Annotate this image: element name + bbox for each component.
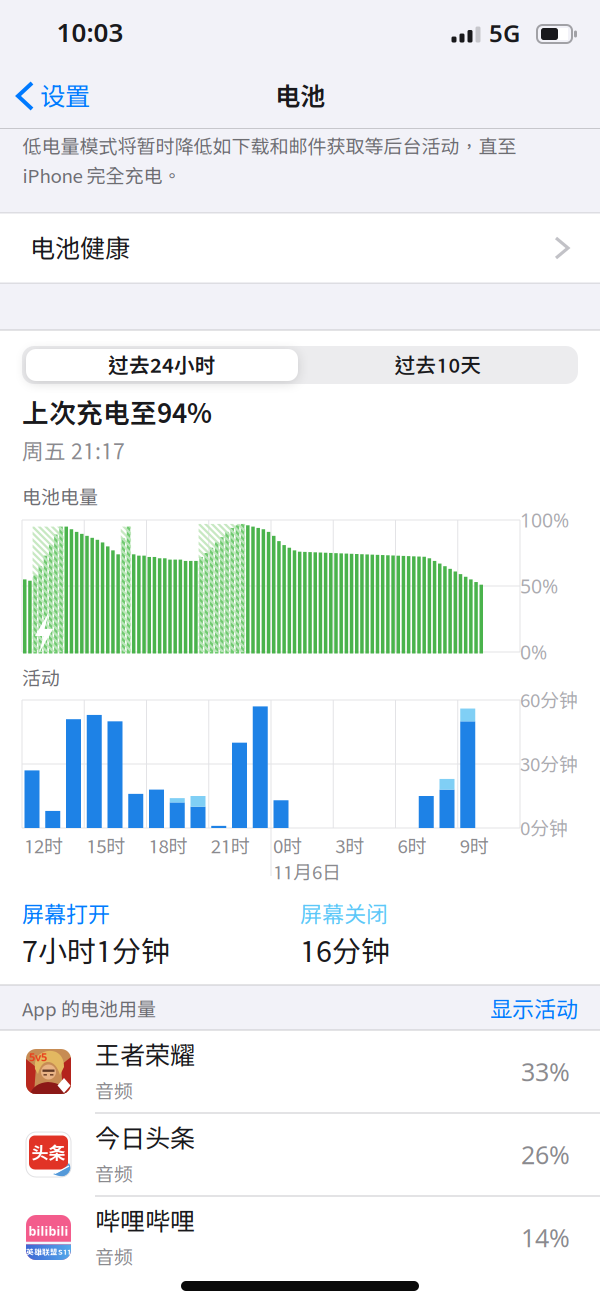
- staticText: 屏幕关闭: [300, 901, 388, 927]
- staticText: App 的电池用量: [22, 998, 156, 1020]
- staticText: 12时: [24, 835, 63, 857]
- staticText: 0分钟: [520, 817, 568, 839]
- staticText: 5v5: [29, 1049, 47, 1064]
- staticText: 显示活动: [490, 996, 578, 1022]
- staticText: 100%: [520, 507, 569, 533]
- staticText: 头条: [31, 1142, 65, 1163]
- button[interactable]: 电池健康: [0, 213, 600, 282]
- staticText: 活动: [22, 667, 60, 689]
- button[interactable]: 设置: [18, 74, 128, 118]
- staticText: 0%: [520, 639, 547, 665]
- button[interactable]: 显示活动: [428, 989, 578, 1029]
- staticText: 设置: [40, 81, 90, 111]
- staticText: 11月6日: [273, 861, 341, 883]
- staticText: bilibili: [28, 1222, 68, 1239]
- button[interactable]: 过去24小时: [24, 346, 300, 384]
- staticText: 电池电量: [22, 486, 98, 508]
- staticText: 屏幕打开: [22, 901, 110, 927]
- staticText: 3时: [335, 835, 364, 857]
- staticText: 电池: [275, 81, 325, 111]
- staticText: 21时: [211, 835, 250, 857]
- staticText: 音频: [95, 1080, 133, 1102]
- staticText: 60分钟: [520, 689, 578, 711]
- staticText: 50%: [520, 573, 558, 599]
- staticText: 10:03: [56, 14, 123, 50]
- staticText: 33%: [521, 1054, 570, 1088]
- staticText: 音频: [95, 1246, 133, 1268]
- staticText: 26%: [521, 1137, 570, 1171]
- staticText: 5G: [489, 17, 520, 49]
- staticText: 0时: [273, 835, 302, 857]
- staticText: 7小时1分钟: [22, 934, 170, 968]
- staticText: 上次充电至94%: [22, 397, 212, 429]
- staticText: 电池健康: [30, 233, 130, 263]
- staticText: 9时: [460, 835, 489, 857]
- staticText: 6时: [397, 835, 426, 857]
- staticText: 18时: [148, 835, 187, 857]
- staticText: 哔哩哔哩: [95, 1206, 195, 1236]
- staticText: 16分钟: [300, 934, 390, 968]
- staticText: 周五 21:17: [22, 438, 125, 464]
- staticText: 15时: [86, 835, 125, 857]
- staticText: 音频: [95, 1163, 133, 1185]
- staticText: 14%: [521, 1220, 570, 1254]
- staticText: 今日头条: [95, 1123, 195, 1153]
- button[interactable]: 过去10天: [300, 346, 576, 384]
- staticText: 过去10天: [394, 353, 481, 377]
- staticText: iPhone 完全充电。: [22, 164, 181, 187]
- button[interactable]: 头条: [0, 1113, 600, 1196]
- button[interactable]: bilibili: [0, 1196, 600, 1279]
- staticText: 30分钟: [520, 753, 578, 775]
- staticText: 过去24小时: [108, 353, 216, 377]
- staticText: 王者荣耀: [95, 1040, 195, 1070]
- button[interactable]: 5v5: [0, 1030, 600, 1113]
- staticText: 英雄联盟S11: [26, 1248, 71, 1256]
- staticText: 低电量模式将暂时降低如下载和邮件获取等后台活动，直至: [22, 135, 516, 157]
